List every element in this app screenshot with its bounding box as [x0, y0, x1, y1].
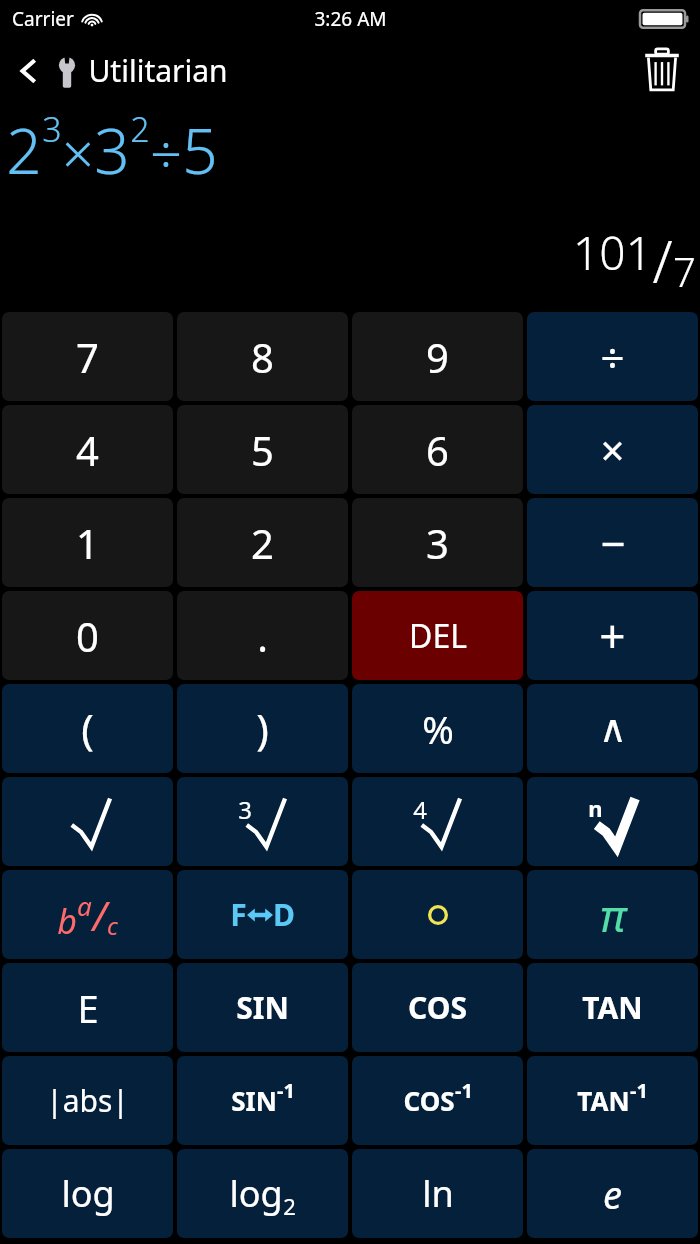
staticText: 3 [426, 516, 449, 570]
staticText: 3 [94, 108, 130, 192]
staticText: 1 [76, 516, 99, 570]
staticText: 2 [283, 1191, 296, 1221]
staticText: / [92, 888, 107, 942]
staticText: ÷ [600, 328, 625, 385]
button[interactable]: 5 [177, 405, 348, 494]
staticText: × [600, 421, 625, 478]
staticText: SIN [236, 987, 289, 1028]
staticText: 3:26 AM [314, 6, 387, 32]
button[interactable]: 0 [2, 591, 173, 680]
staticText: − [600, 513, 626, 573]
staticText: 8 [251, 330, 274, 384]
staticText: 7 [673, 244, 696, 298]
button[interactable]: ) [177, 684, 348, 773]
button[interactable]: 7 [2, 312, 173, 401]
button[interactable]: 9 [352, 312, 523, 401]
button[interactable]: Log base 2 [177, 1149, 348, 1238]
button[interactable]: Fourth root [352, 777, 523, 866]
button[interactable]: Degree [352, 870, 523, 959]
button[interactable]: Clear history [624, 40, 700, 100]
staticText: / [652, 221, 673, 300]
button[interactable]: |abs| [2, 1056, 173, 1145]
staticText: ln [422, 1169, 454, 1218]
staticText: -1 [630, 1077, 648, 1104]
button[interactable]: ÷ [527, 312, 698, 401]
staticText: COS [408, 987, 467, 1028]
button[interactable]: ln [352, 1149, 523, 1238]
button[interactable]: log [2, 1149, 173, 1238]
staticText: 7 [76, 330, 99, 384]
staticText: 4 [76, 423, 99, 477]
staticText: |abs| [46, 1080, 129, 1121]
button[interactable]: π [527, 870, 698, 959]
button[interactable]: − [527, 498, 698, 587]
staticText: 2 [251, 516, 274, 570]
button[interactable]: ( [2, 684, 173, 773]
button[interactable]: 6 [352, 405, 523, 494]
button[interactable]: × [527, 405, 698, 494]
staticText: -1 [455, 1077, 473, 1104]
staticText: 0 [76, 609, 99, 663]
staticText: ÷ [150, 114, 182, 190]
button[interactable]: Back [0, 44, 236, 97]
button[interactable]: TAN [527, 963, 698, 1052]
other: Back [16, 53, 42, 89]
button[interactable]: . [177, 591, 348, 680]
staticText: 5 [182, 108, 218, 192]
button[interactable]: 3 [352, 498, 523, 587]
staticText: F [230, 894, 247, 935]
button[interactable]: 1 [2, 498, 173, 587]
button[interactable]: Mixed fraction [2, 870, 173, 959]
button[interactable]: Arc cosine [352, 1056, 523, 1145]
button[interactable]: DEL [352, 591, 523, 680]
staticText: D [273, 894, 295, 935]
staticText: 4 [413, 793, 427, 826]
staticText: TAN [577, 1083, 630, 1118]
staticText: TAN [582, 987, 643, 1028]
staticText: E [77, 982, 99, 1034]
button[interactable]: Arc tangent [527, 1056, 698, 1145]
staticText: log [61, 1169, 115, 1218]
staticText: a [77, 888, 92, 923]
staticText: SIN [231, 1083, 277, 1118]
staticText: π [600, 885, 626, 945]
staticText: e [603, 1168, 622, 1220]
staticText: . [257, 609, 268, 663]
staticText: 2 [130, 106, 150, 152]
button[interactable]: COS [352, 963, 523, 1052]
button[interactable]: % [352, 684, 523, 773]
button[interactable]: 4 [2, 405, 173, 494]
staticText: c [107, 909, 118, 942]
staticText: -1 [277, 1077, 295, 1104]
staticText: b [57, 898, 77, 944]
staticText: 3 [238, 793, 252, 826]
staticText: 9 [426, 330, 449, 384]
button[interactable]: + [527, 591, 698, 680]
staticText: 6 [426, 423, 449, 477]
button[interactable]: Square root [2, 777, 173, 866]
button[interactable]: e [527, 1149, 698, 1238]
button[interactable]: SIN [177, 963, 348, 1052]
staticText: 5 [251, 423, 274, 477]
staticText: % [422, 703, 454, 755]
staticText: n [588, 793, 603, 823]
staticText: + [599, 604, 626, 667]
button[interactable]: 2 [177, 498, 348, 587]
button[interactable]: 8 [177, 312, 348, 401]
button[interactable]: E [2, 963, 173, 1052]
staticText: Utilitarian [88, 50, 228, 91]
staticText: log [229, 1169, 283, 1218]
staticText: 3 [42, 106, 62, 152]
button[interactable]: ∧ [527, 684, 698, 773]
staticText: COS [403, 1083, 455, 1118]
button[interactable]: Fraction to decimal [177, 870, 348, 959]
staticText: Carrier [12, 6, 74, 32]
staticText: 101 [573, 221, 652, 284]
staticText: 2 [6, 108, 42, 192]
button[interactable]: Arc sine [177, 1056, 348, 1145]
button[interactable]: Nth root [527, 777, 698, 866]
staticText: ∧ [599, 707, 627, 751]
button[interactable]: Cube root [177, 777, 348, 866]
staticText: × [62, 114, 94, 190]
staticText: ( [81, 700, 94, 757]
